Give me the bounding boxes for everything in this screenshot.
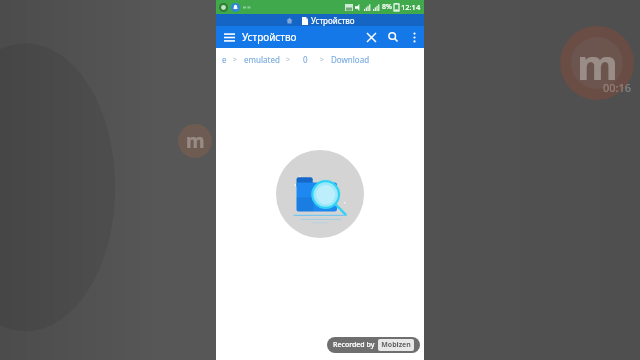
staticText: 12:14 [401, 2, 421, 12]
button[interactable]: 0 [301, 51, 310, 68]
staticText: emulated [244, 54, 280, 65]
staticText: Download [331, 54, 370, 65]
button[interactable]: Search [382, 26, 404, 48]
staticText: Recorded by [333, 340, 375, 350]
button[interactable]: Home [281, 17, 298, 24]
staticText: 00:16 [603, 80, 632, 95]
staticText: m [577, 35, 618, 92]
button[interactable]: Устройство [298, 15, 359, 26]
button[interactable]: Download [329, 51, 372, 68]
staticText: m [186, 128, 205, 154]
button[interactable]: Close [360, 26, 382, 48]
staticText: > [233, 55, 238, 65]
staticText: > [286, 55, 291, 65]
button[interactable]: Recorded by [327, 337, 420, 353]
staticText: Устройство [242, 30, 360, 44]
button[interactable]: More options [404, 26, 424, 48]
staticText: Mobizen [381, 340, 411, 350]
button[interactable]: Menu [216, 26, 242, 48]
staticText: e [222, 54, 227, 65]
staticText: > [320, 55, 325, 65]
staticText: Устройство [311, 15, 355, 26]
staticText: 0 [303, 54, 308, 65]
staticText: 8% [382, 2, 392, 12]
button[interactable]: emulated [242, 51, 282, 68]
button[interactable]: e [220, 51, 229, 68]
